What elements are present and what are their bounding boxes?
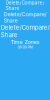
staticText: Delete/Compare/Share <box>5 0 44 11</box>
staticText: Delete/Compare/Share <box>3 11 46 24</box>
staticText: Delete/Compare/Share <box>0 24 49 39</box>
staticText: 06:09 PM <box>17 45 32 49</box>
staticText: Time Zones <box>10 39 39 45</box>
